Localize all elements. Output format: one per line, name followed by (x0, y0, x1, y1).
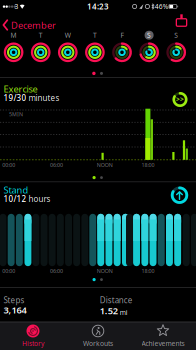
staticText: Distance (100, 295, 133, 305)
staticText: Exercise (4, 83, 38, 95)
button[interactable] (83, 40, 107, 64)
staticText: 19/30 (4, 93, 27, 103)
button[interactable] (56, 40, 80, 64)
staticText: Stand (4, 184, 29, 196)
staticText: 3,164 (4, 304, 27, 316)
staticText: 10/12 (4, 194, 27, 204)
button[interactable] (171, 13, 191, 28)
staticText: T (39, 31, 43, 40)
staticText: History (22, 339, 44, 348)
staticText: hours (29, 194, 51, 204)
staticText: 14:23 (87, 1, 109, 12)
staticText: 46% (155, 2, 169, 11)
staticText: Workouts (83, 339, 113, 348)
staticText: 06:00 (50, 161, 63, 169)
button[interactable] (2, 40, 26, 64)
staticText: >> (176, 95, 184, 104)
staticText: F (120, 31, 123, 40)
staticText: 00:00 (2, 161, 15, 169)
staticText: mi (120, 308, 128, 317)
staticText: M (11, 31, 17, 40)
button[interactable] (137, 40, 161, 64)
button[interactable] (164, 40, 188, 64)
button[interactable]: History (1, 322, 65, 350)
staticText: 06:00 (50, 267, 63, 275)
staticText: 00:00 (2, 267, 15, 275)
staticText: 18:00 (142, 267, 155, 275)
staticText: 3 (15, 2, 19, 11)
staticText: T (93, 31, 97, 40)
button[interactable] (110, 40, 134, 64)
staticText: December (11, 19, 56, 31)
button[interactable]: December (0, 17, 70, 33)
staticText: NOON (97, 267, 113, 275)
button[interactable]: Achievements (131, 322, 195, 350)
staticText: minutes (29, 93, 60, 103)
button[interactable] (29, 40, 53, 64)
staticText: S (174, 31, 178, 40)
staticText: 18:00 (142, 161, 155, 169)
staticText: Steps (4, 295, 25, 305)
staticText: S (147, 31, 151, 40)
staticText: W (65, 31, 71, 40)
staticText: Achievements (141, 339, 184, 348)
button[interactable]: Workouts (66, 322, 130, 350)
staticText: 1.52 (100, 304, 118, 317)
staticText: 5MIN (9, 111, 23, 118)
staticText: NOON (97, 161, 113, 169)
